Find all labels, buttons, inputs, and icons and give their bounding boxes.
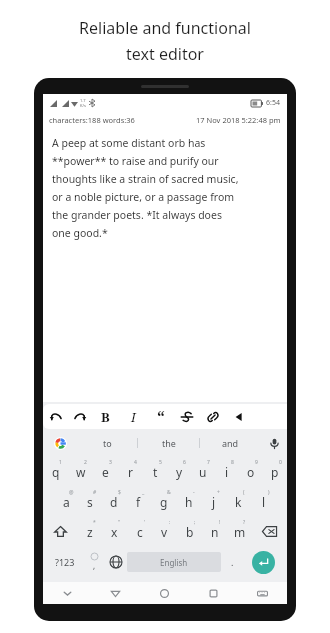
staticText: ; [194, 519, 196, 526]
staticText: j [212, 494, 216, 510]
staticText: d [110, 494, 118, 510]
button[interactable]: 9 [239, 456, 263, 486]
staticText: g [160, 494, 168, 510]
button[interactable]: : [152, 516, 177, 546]
button[interactable]: Redo [72, 406, 88, 428]
staticText: p [271, 464, 279, 480]
button[interactable]: ! [202, 516, 227, 546]
staticText: : [169, 519, 171, 526]
button[interactable]: 4 [118, 456, 143, 486]
button[interactable]: I [125, 406, 141, 428]
staticText: 6 [183, 459, 186, 466]
staticText: n [211, 524, 219, 540]
button[interactable]: More options [231, 406, 247, 428]
staticText: l [262, 494, 266, 510]
staticText: b [186, 524, 194, 540]
staticText: the [162, 437, 176, 449]
staticText: 4 [134, 459, 137, 466]
staticText: B [101, 408, 110, 426]
button[interactable]: Emoji [83, 546, 105, 578]
button[interactable]: 1 [43, 456, 68, 486]
button[interactable]: the [138, 430, 199, 456]
button[interactable]: Link [205, 406, 221, 428]
button[interactable]: Back [91, 582, 140, 604]
button[interactable]: ' [127, 516, 152, 546]
staticText: z [87, 524, 93, 540]
staticText: ? [243, 519, 246, 526]
staticText: ?123 [55, 556, 75, 568]
button[interactable]: Backspace [252, 516, 287, 546]
staticText: + [217, 489, 220, 496]
button[interactable]: Voice input [261, 430, 287, 456]
staticText: o [247, 464, 255, 480]
button[interactable]: " [102, 516, 127, 546]
button[interactable]: “ [153, 406, 169, 428]
button[interactable]: # [78, 486, 102, 516]
button[interactable]: Google search [43, 430, 77, 456]
staticText: 1 [59, 459, 62, 466]
button[interactable]: & [151, 486, 176, 516]
button[interactable]: Home [140, 582, 189, 604]
button[interactable]: ; [177, 516, 202, 546]
button[interactable]: @ [54, 486, 78, 516]
staticText: 9 [255, 459, 258, 466]
staticText: 2 [84, 459, 87, 466]
button[interactable]: and [200, 430, 261, 456]
staticText: A peep at some distant orb has [52, 136, 206, 150]
button[interactable]: ( [226, 486, 251, 516]
staticText: K/s [80, 103, 86, 108]
button[interactable]: 6 [167, 456, 191, 486]
button[interactable]: ) [251, 486, 276, 516]
button[interactable]: 5 [143, 456, 167, 486]
button[interactable]: Hide keyboard [43, 582, 91, 604]
staticText: i [225, 464, 229, 480]
button[interactable]: + [201, 486, 226, 516]
button[interactable]: ? [227, 516, 252, 546]
button[interactable]: Switch keyboard [238, 582, 287, 604]
button[interactable]: 2 [68, 456, 93, 486]
button[interactable]: Enter [252, 551, 275, 574]
button[interactable]: 7 [191, 456, 215, 486]
button[interactable]: $ [102, 486, 126, 516]
button[interactable]: - [176, 486, 201, 516]
staticText: s [87, 494, 93, 510]
button[interactable]: to [77, 430, 137, 456]
button[interactable]: Strikethrough [179, 406, 195, 428]
staticText: and [222, 437, 239, 449]
button[interactable]: English [127, 552, 221, 572]
staticText: t [153, 464, 158, 480]
button[interactable]: _ [126, 486, 151, 516]
button[interactable]: 8 [215, 456, 239, 486]
staticText: v [161, 524, 168, 540]
button[interactable]: A peep at some distant orb has [52, 134, 282, 242]
button[interactable]: Recent apps [189, 582, 238, 604]
staticText: . [231, 556, 234, 568]
staticText: h [185, 494, 193, 510]
staticText: x [111, 524, 118, 540]
button[interactable]: ?123 [47, 546, 83, 578]
staticText: thoughts like a strain of sacred music, [52, 172, 239, 186]
button[interactable]: 0 [263, 456, 287, 486]
staticText: f [136, 494, 141, 510]
staticText: & [167, 489, 171, 496]
staticText: 0 [279, 459, 282, 466]
button[interactable]: 3 [93, 456, 118, 486]
button[interactable]: Shift [43, 516, 77, 546]
staticText: English [160, 557, 188, 568]
staticText: “ [157, 406, 165, 428]
button[interactable]: Undo [48, 406, 64, 428]
button[interactable]: . [221, 546, 243, 578]
staticText: c [137, 524, 143, 540]
staticText: ) [268, 489, 270, 496]
staticText: 3 [109, 459, 112, 466]
button[interactable]: * [77, 516, 102, 546]
staticText: r [128, 464, 133, 480]
staticText: or a noble picture, or a passage from [52, 190, 235, 204]
staticText: " [118, 519, 121, 526]
staticText: I [131, 408, 136, 426]
staticText: 8 [231, 459, 234, 466]
button[interactable]: Change language [105, 546, 127, 578]
button[interactable]: B [97, 406, 113, 428]
staticText: q [52, 464, 60, 480]
staticText: $ [118, 489, 121, 496]
